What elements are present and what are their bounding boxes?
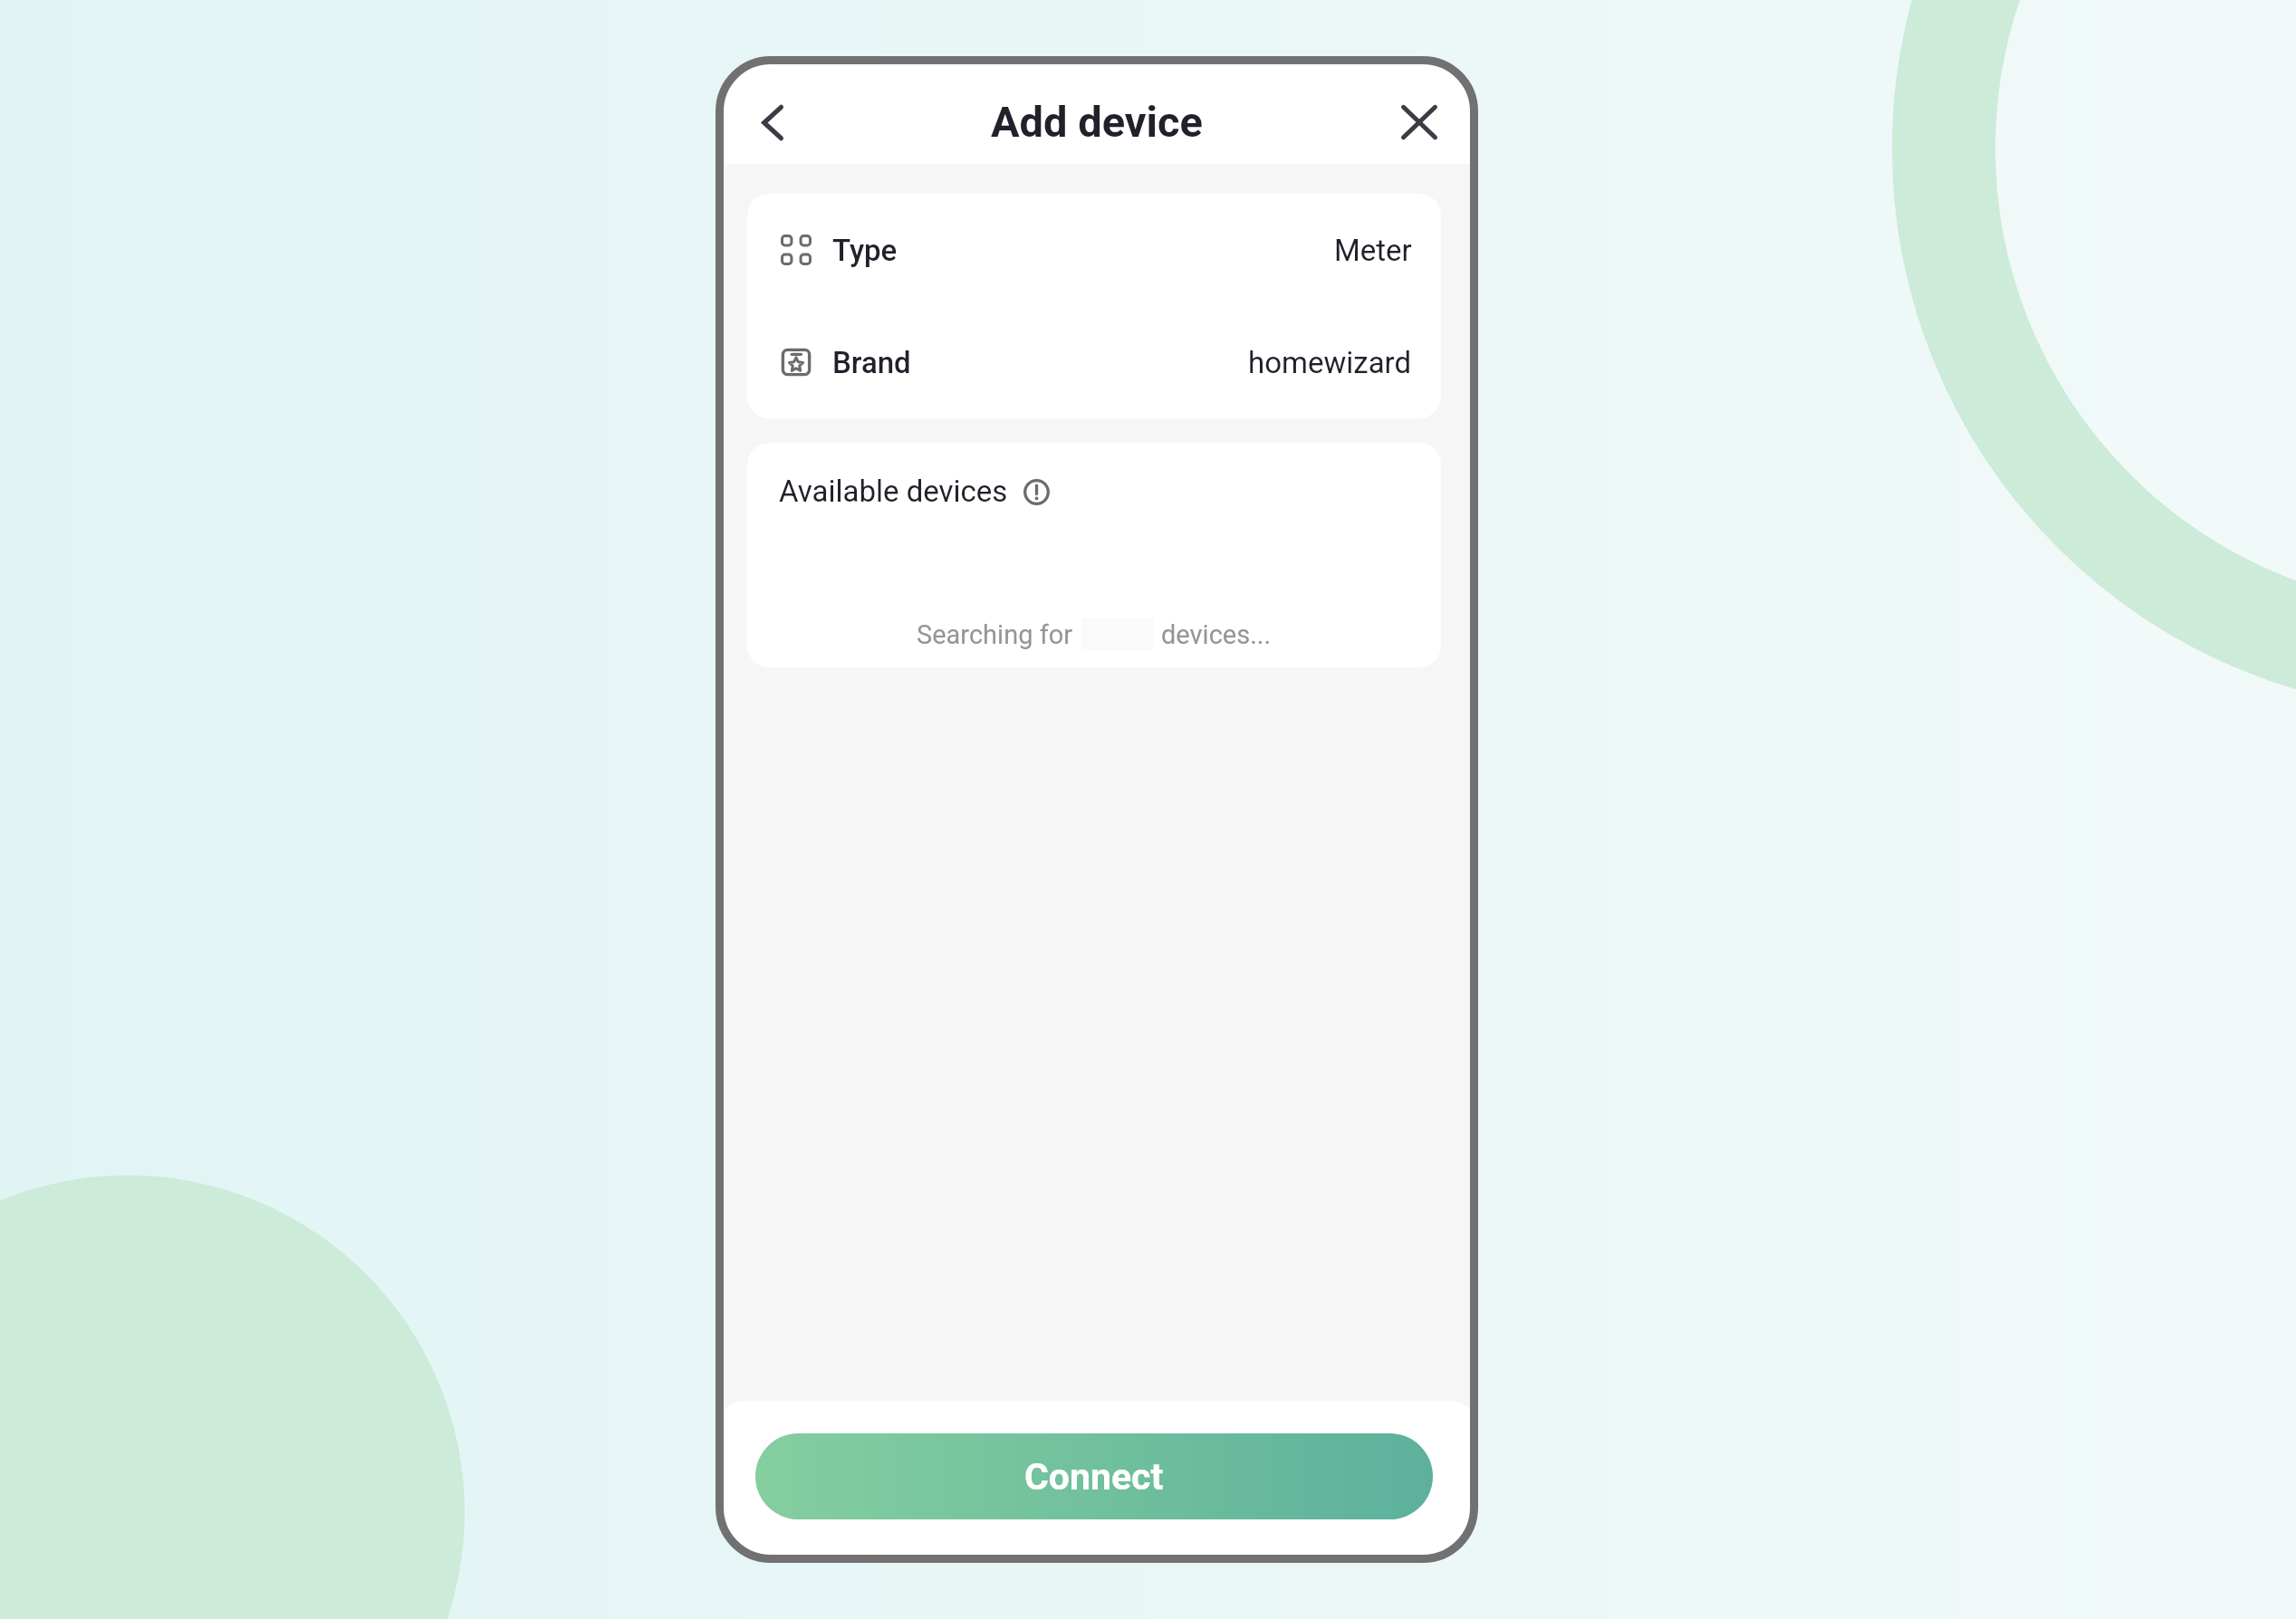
staticText: Searching for — [917, 619, 1073, 650]
button[interactable]: Close — [1381, 84, 1457, 160]
button[interactable]: Connect — [755, 1433, 1433, 1519]
button[interactable]: Info — [1020, 475, 1052, 508]
button[interactable]: Type — [747, 194, 1441, 306]
staticText: homewizard — [1248, 345, 1412, 380]
staticText: Type — [832, 233, 898, 268]
staticText: Available devices — [779, 474, 1008, 509]
staticText: Connect — [1024, 1455, 1164, 1499]
button[interactable]: Back — [733, 84, 809, 160]
staticText: Meter — [1334, 233, 1412, 268]
staticText: Add device — [991, 97, 1203, 147]
staticText: Brand — [832, 345, 911, 380]
staticText: devices... — [1161, 619, 1272, 650]
button[interactable]: Brand — [747, 306, 1441, 418]
